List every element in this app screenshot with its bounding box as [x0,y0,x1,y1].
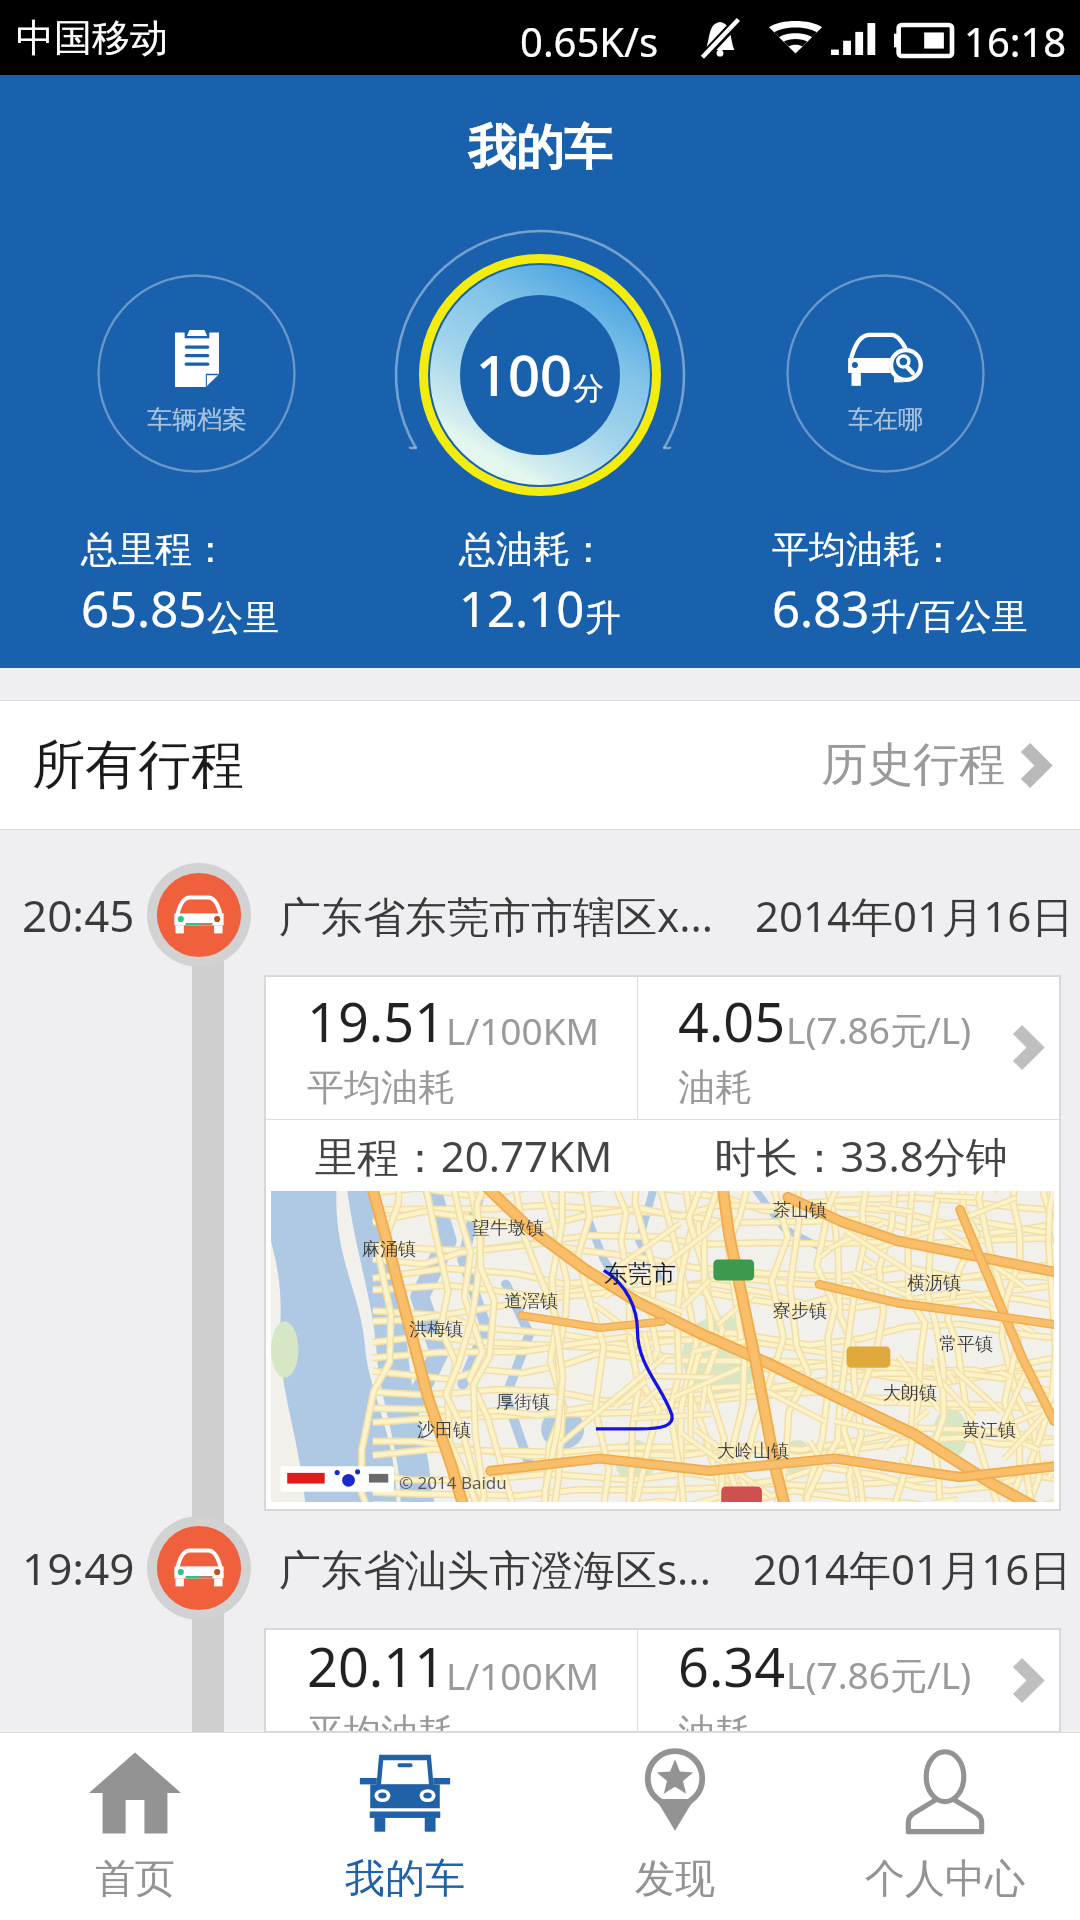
staticText: 麻涌镇 [362,1238,416,1261]
staticText: 茶山镇 [773,1199,827,1222]
staticText: 车在哪 [848,404,923,435]
staticText: 平均油耗 [307,1709,455,1732]
staticText: 横沥镇 [907,1272,961,1295]
staticText: 2014年01月16日 [753,1540,1072,1597]
staticText: 广东省汕头市澄海区s... [279,1540,711,1597]
button[interactable]: 所有行程 [0,700,1080,830]
staticText: 升/百公里 [870,591,1028,640]
staticText: 总里程： [81,526,229,573]
staticText: L(7.86元/L) [786,1649,972,1700]
button[interactable]: 个人中心 [810,1733,1080,1920]
button[interactable]: 车辆档案 [97,274,296,473]
staticText: 分 [573,369,604,408]
button[interactable]: 20.11 [265,1629,1060,1732]
button[interactable]: 19:49 [0,1516,1080,1620]
staticText: 中国移动 [16,14,168,62]
staticText: 首页 [95,1853,175,1903]
staticText: 公里 [207,595,279,640]
staticText: 洪梅镇 [409,1318,463,1341]
staticText: 个人中心 [865,1853,1025,1903]
staticText: 大朗镇 [883,1382,937,1405]
button[interactable]: 20:45 [0,863,1080,967]
staticText: 65.85 [81,575,207,642]
staticText: 常平镇 [939,1333,993,1356]
staticText: 升 [585,595,621,640]
staticText: 车辆档案 [147,404,247,435]
staticText: L/100KM [446,1005,600,1055]
staticText: 19:49 [22,1538,135,1598]
staticText: 平均油耗 [307,1064,455,1111]
staticText: 大岭山镇 [717,1440,789,1463]
staticText: 东莞市 [604,1259,676,1289]
staticText: 6.34 [678,1629,786,1703]
staticText: 寮步镇 [773,1300,827,1323]
staticText: 油耗 [678,1709,752,1732]
staticText: 望牛墩镇 [472,1217,544,1240]
staticText: 平均油耗： [772,526,957,573]
button[interactable]: 首页 [0,1733,270,1920]
staticText: 所有行程 [32,732,244,799]
staticText: 100 [476,336,573,412]
staticText: 广东省东莞市市辖区x... [279,887,713,944]
button[interactable]: 19.51 [265,976,1060,1510]
staticText: 油耗 [678,1064,752,1111]
staticText: 20.11 [307,1629,446,1703]
staticText: 厚街镇 [496,1391,550,1414]
staticText: 黄江镇 [962,1419,1016,1442]
staticText: 沙田镇 [417,1419,471,1442]
staticText: 总油耗： [459,526,607,573]
staticText: 6.83 [772,575,870,642]
staticText: 时长：33.8分钟 [662,1127,1060,1184]
button[interactable]: 我的车 [270,1733,540,1920]
button[interactable]: 发现 [540,1733,810,1920]
staticText: 发现 [635,1853,715,1903]
staticText: L/100KM [446,1650,600,1700]
staticText: 0.65K/s [520,14,659,68]
staticText: 2014年01月16日 [755,887,1074,944]
staticText: 道滘镇 [504,1290,558,1313]
staticText: 19.51 [307,984,446,1058]
staticText: 16:18 [964,14,1067,68]
staticText: 4.05 [678,984,786,1058]
staticText: 历史行程 [821,736,1005,794]
staticText: 里程：20.77KM [265,1127,662,1184]
staticText: 我的车 [468,118,612,178]
button[interactable]: 车况评分 100 分 [390,225,690,525]
staticText: 20:45 [22,885,135,945]
button[interactable]: 车在哪 [786,274,985,473]
staticText: © 2014 Baidu [399,1471,507,1494]
staticText: 我的车 [345,1853,465,1903]
staticText: L(7.86元/L) [786,1004,972,1055]
staticText: 12.10 [459,575,585,642]
